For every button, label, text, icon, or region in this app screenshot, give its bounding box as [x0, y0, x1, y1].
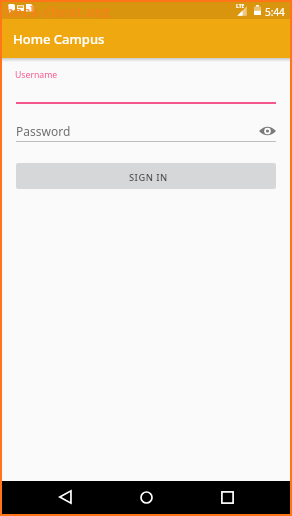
button[interactable]: Recent apps — [212, 482, 242, 512]
staticText: Home Campus — [13, 30, 105, 48]
staticText: hack-cheat.org — [5, 2, 111, 19]
button[interactable]: Password — [16, 120, 276, 142]
staticText: SIGN IN — [129, 171, 168, 184]
button[interactable]: Show password — [259, 125, 276, 137]
button[interactable]: Home — [131, 482, 161, 512]
staticText: Password — [16, 123, 71, 139]
button[interactable]: SIGN IN — [16, 163, 276, 189]
button[interactable]: Back — [50, 482, 80, 512]
staticText: 5:44 — [265, 5, 285, 19]
button[interactable]: Username — [16, 64, 276, 104]
staticText: Username — [15, 69, 58, 81]
staticText: LTE — [236, 3, 245, 10]
